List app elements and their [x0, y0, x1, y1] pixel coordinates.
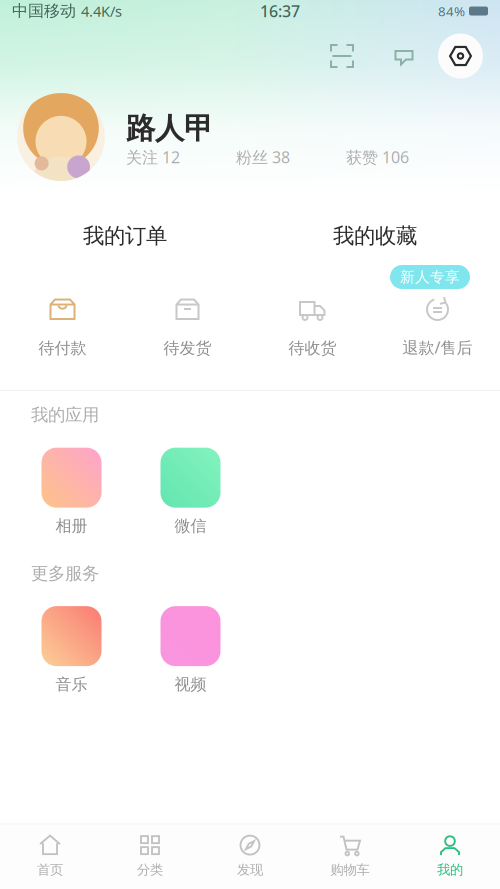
- button[interactable]: 获赞 106: [346, 146, 409, 168]
- button[interactable]: 视频: [131, 606, 250, 694]
- staticText: 微信: [174, 516, 206, 536]
- staticText: 粉丝 38: [236, 146, 290, 168]
- staticText: 退款/售后: [402, 337, 472, 358]
- staticText: 我的: [437, 862, 463, 878]
- button[interactable]: 我的收藏: [250, 208, 500, 264]
- staticText: 相册: [55, 516, 87, 536]
- staticText: 我的收藏: [333, 223, 417, 249]
- button[interactable]: 我的订单: [0, 208, 250, 264]
- staticText: 首页: [37, 862, 63, 878]
- button[interactable]: 消息: [387, 39, 421, 73]
- staticText: 4.4K/s: [81, 1, 122, 21]
- staticText: 视频: [174, 674, 206, 694]
- button[interactable]: 我的: [400, 825, 500, 889]
- button[interactable]: 待收货: [250, 294, 375, 358]
- staticText: 发现: [237, 862, 263, 878]
- staticText: 新人专享: [400, 268, 460, 286]
- staticText: 更多服务: [31, 563, 99, 584]
- staticText: 待付款: [38, 338, 86, 358]
- staticText: 路人甲: [126, 110, 213, 146]
- button[interactable]: 粉丝 38: [236, 146, 290, 168]
- button[interactable]: 音乐: [12, 606, 131, 694]
- staticText: 待收货: [288, 338, 336, 358]
- staticText: 分类: [137, 862, 163, 878]
- button[interactable]: 设置: [438, 33, 483, 78]
- staticText: 获赞 106: [346, 146, 409, 168]
- button[interactable]: 扫一扫: [325, 39, 359, 73]
- button[interactable]: 新人专享: [390, 265, 470, 289]
- staticText: 购物车: [330, 862, 369, 878]
- staticText: 我的应用: [31, 404, 99, 426]
- button[interactable]: 首页: [0, 825, 100, 889]
- button[interactable]: 关注 12: [126, 146, 180, 168]
- staticText: 中国移动: [12, 1, 76, 21]
- staticText: 16:37: [260, 0, 300, 22]
- staticText: 我的订单: [83, 223, 167, 249]
- staticText: 音乐: [55, 674, 87, 694]
- button[interactable]: 相册: [12, 448, 131, 536]
- button[interactable]: 购物车: [300, 825, 400, 889]
- staticText: 84%: [438, 2, 465, 20]
- button[interactable]: 分类: [100, 825, 200, 889]
- button[interactable]: 退款/售后: [375, 294, 500, 358]
- button[interactable]: 发现: [200, 825, 300, 889]
- button[interactable]: 待发货: [125, 294, 250, 358]
- button[interactable]: 待付款: [0, 294, 125, 358]
- staticText: 关注 12: [126, 146, 180, 168]
- staticText: 待发货: [163, 338, 211, 358]
- button[interactable]: 微信: [131, 448, 250, 536]
